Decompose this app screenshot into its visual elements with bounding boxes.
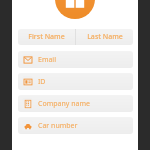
- staticText: Email: [38, 55, 56, 65]
- staticText: ID: [38, 77, 46, 87]
- staticText: First Name: [28, 32, 65, 42]
- button[interactable]: Car number: [18, 117, 133, 134]
- other: Profile avatar: [55, 0, 95, 19]
- button[interactable]: Email: [18, 51, 133, 68]
- staticText: Company name: [38, 99, 90, 109]
- button[interactable]: Company name: [18, 95, 133, 112]
- button[interactable]: First Name: [18, 29, 75, 45]
- staticText: Last Name: [87, 32, 123, 42]
- button[interactable]: ID: [18, 73, 133, 90]
- button[interactable]: Last Name: [76, 29, 133, 45]
- staticText: Car number: [38, 121, 78, 131]
